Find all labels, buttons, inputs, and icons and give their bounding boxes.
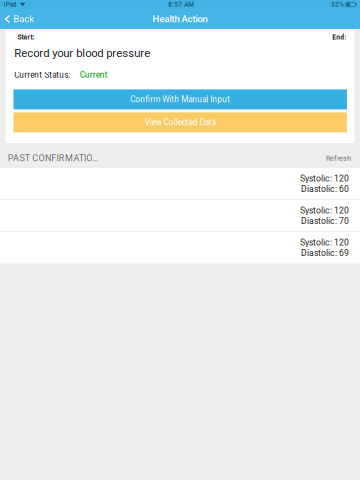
- staticText: Current: [80, 70, 108, 80]
- button[interactable]: Back: [0, 9, 39, 29]
- staticText: Start:: [17, 33, 34, 41]
- staticText: Back: [13, 13, 34, 25]
- staticText: View Collected Data: [145, 117, 216, 127]
- staticText: Record your blood pressure: [14, 46, 150, 60]
- staticText: Systolic: 120: [300, 173, 349, 183]
- button[interactable]: Systolic: 120: [0, 200, 360, 231]
- button[interactable]: Refresh: [326, 154, 351, 162]
- staticText: Systolic: 120: [300, 237, 349, 247]
- staticText: Health Action: [152, 13, 207, 25]
- staticText: Diastolic: 69: [301, 248, 349, 258]
- staticText: Diastolic: 70: [301, 216, 349, 226]
- staticText: Refresh: [326, 154, 351, 162]
- staticText: Current Status:: [14, 70, 70, 80]
- staticText: 32%: [331, 1, 344, 8]
- button[interactable]: Confirm With Manual Input: [13, 89, 347, 109]
- staticText: End:: [332, 33, 346, 41]
- staticText: Diastolic: 60: [301, 184, 349, 194]
- staticText: iPad: [4, 1, 17, 8]
- staticText: PAST CONFIRMATIONS: [8, 153, 104, 163]
- staticText: Systolic: 120: [300, 205, 349, 215]
- button[interactable]: Systolic: 120: [0, 168, 360, 199]
- button[interactable]: Systolic: 120: [0, 232, 360, 263]
- button[interactable]: View Collected Data: [13, 112, 347, 132]
- staticText: Confirm With Manual Input: [130, 94, 230, 104]
- staticText: 8:57 AM: [168, 1, 194, 8]
